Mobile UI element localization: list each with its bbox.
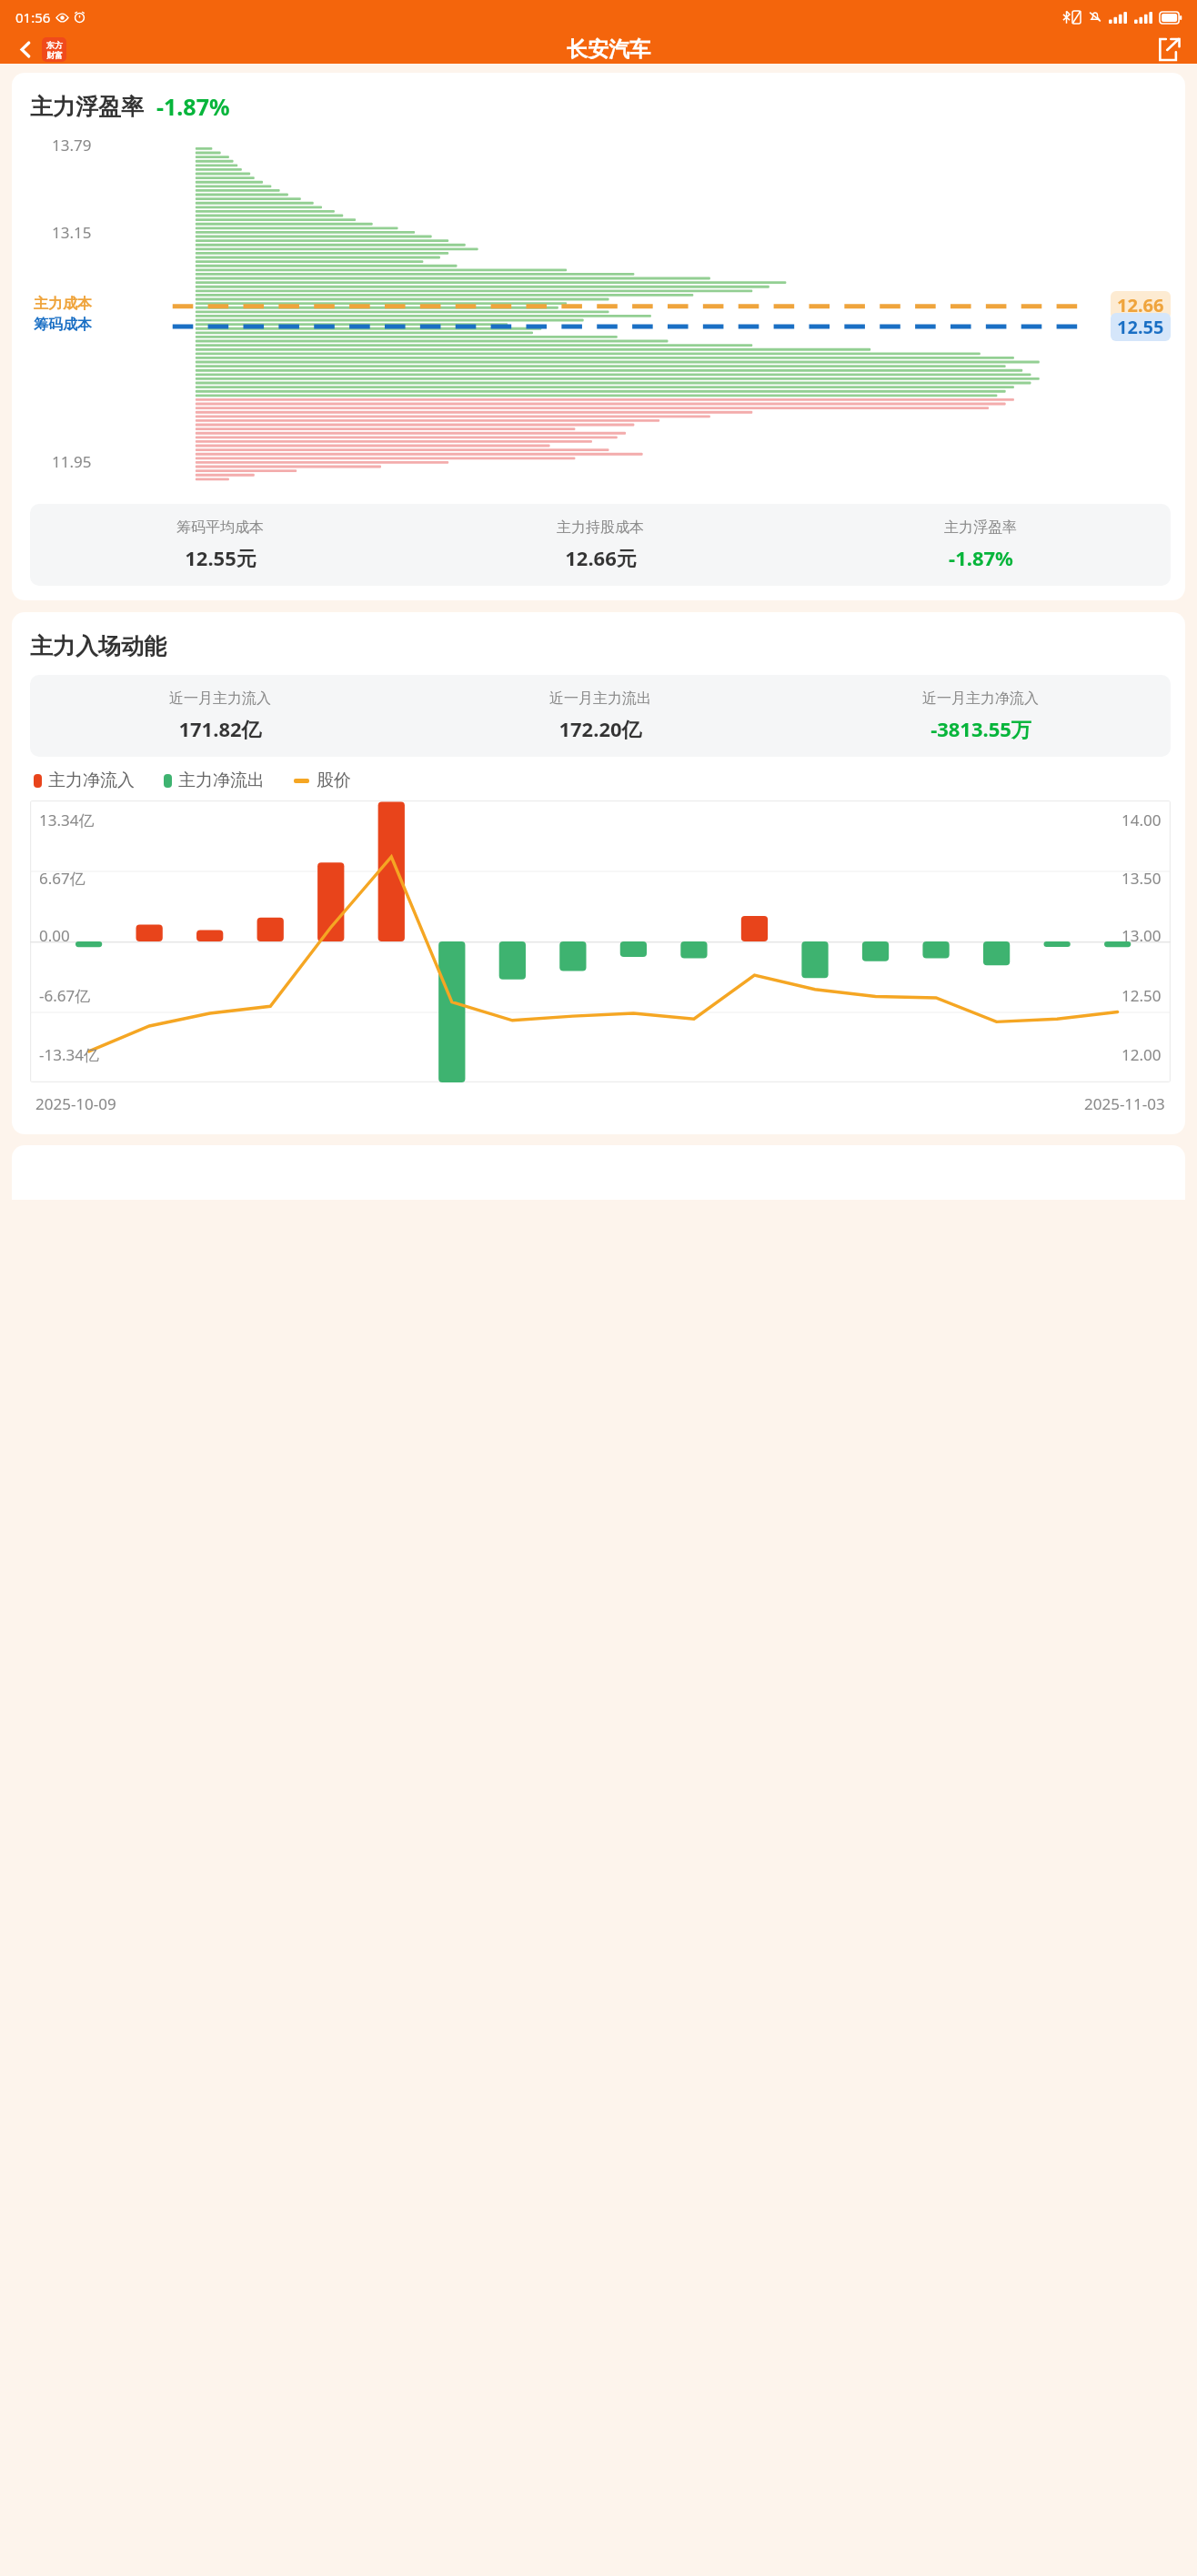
staticText: 主力持股成本: [557, 518, 644, 537]
staticText: 13.15: [52, 222, 92, 243]
staticText: 东方: [46, 40, 63, 50]
staticText: -1.87%: [949, 544, 1013, 571]
staticText: 12.55元: [185, 544, 256, 571]
staticText: 近一月主力净流入: [922, 689, 1039, 708]
staticText: 主力浮盈率: [944, 518, 1017, 537]
staticText: 主力净流入: [48, 770, 135, 791]
staticText: 筹码平均成本: [176, 518, 264, 537]
staticText: 14.00: [1122, 810, 1162, 830]
staticText: 2025-11-03: [1084, 1093, 1165, 1114]
staticText: -6.67亿: [39, 985, 91, 1006]
staticText: 12.50: [1122, 985, 1162, 1006]
button[interactable]: East Money: [42, 37, 66, 62]
staticText: 01:56: [15, 8, 51, 26]
staticText: 长安汽车: [567, 36, 650, 63]
staticText: -3813.55万: [930, 715, 1031, 742]
staticText: 主力入场动能: [30, 632, 166, 660]
staticText: 财富: [46, 50, 63, 60]
staticText: 171.82亿: [178, 715, 262, 742]
button[interactable]: Back: [11, 35, 40, 64]
staticText: -13.34亿: [39, 1044, 99, 1065]
staticText: 筹码成本: [34, 316, 92, 334]
staticText: -1.87%: [156, 91, 230, 122]
staticText: 12.55: [1117, 315, 1164, 339]
staticText: 股价: [317, 770, 351, 791]
staticText: 13.00: [1122, 925, 1162, 946]
staticText: 0.00: [39, 925, 70, 946]
staticText: 172.20亿: [558, 715, 642, 742]
staticText: 11.95: [52, 451, 92, 472]
staticText: 13.50: [1122, 868, 1162, 889]
staticText: 13.79: [52, 135, 92, 156]
staticText: 主力浮盈率: [30, 93, 144, 121]
staticText: 主力净流出: [178, 770, 265, 791]
staticText: 12.66元: [565, 544, 637, 571]
staticText: 2025-10-09: [35, 1093, 116, 1114]
staticText: 6.67亿: [39, 868, 85, 889]
staticText: 近一月主力流入: [169, 689, 271, 708]
button[interactable]: Share: [1152, 35, 1186, 64]
staticText: 主力成本: [34, 295, 92, 313]
staticText: 近一月主力流出: [549, 689, 651, 708]
staticText: 12.00: [1122, 1044, 1162, 1065]
staticText: 12.66: [1117, 293, 1164, 317]
staticText: 13.34亿: [39, 810, 95, 830]
